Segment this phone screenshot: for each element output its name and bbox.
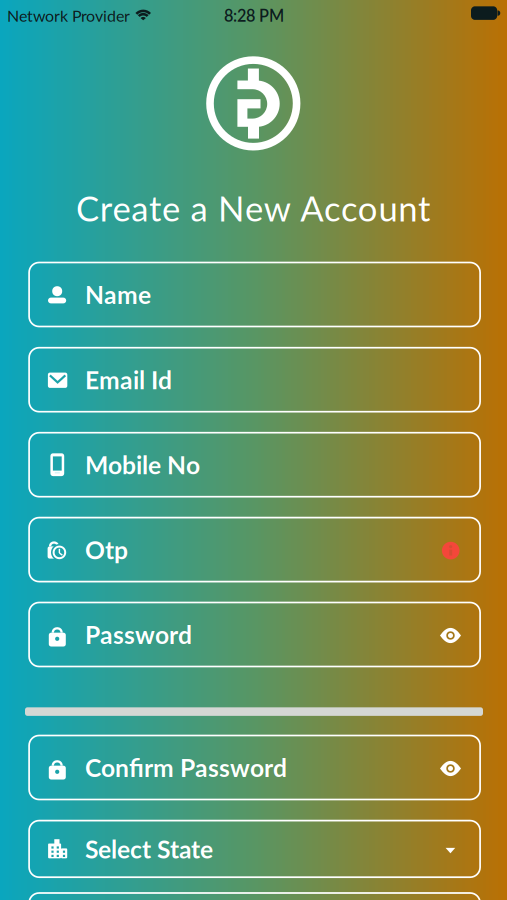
staticText: Otp [85,535,128,564]
staticText: Password [85,620,192,649]
staticText: 8:28 PM [224,6,284,25]
button[interactable]: Confirm Password [29,735,480,799]
button[interactable]: Mobile No [29,433,480,497]
button[interactable]: Otp [29,518,480,582]
staticText: Name [85,280,151,309]
button[interactable]: Email Id [29,348,480,412]
button[interactable]: Select State [29,821,480,877]
staticText: Confirm Password [85,753,287,782]
button[interactable]: Show password [433,622,467,648]
button[interactable]: Name [29,262,480,326]
button[interactable]: Show password [433,755,467,781]
staticText: Mobile No [85,450,200,479]
staticText: Network Provider [7,6,130,25]
staticText: Select State [85,834,213,864]
staticText: Email Id [85,365,172,394]
button[interactable]: Password [29,602,480,666]
button[interactable]: Select City [29,893,480,900]
staticText: Create a New Account [76,187,430,229]
